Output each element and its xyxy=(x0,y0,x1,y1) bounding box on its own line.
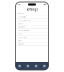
button[interactable]: General xyxy=(15,12,48,15)
button[interactable]: Search xyxy=(24,62,32,70)
button[interactable]: Screen Time xyxy=(15,36,48,39)
button[interactable]: Privacy & Security xyxy=(15,19,48,22)
button[interactable]: Wallpaper xyxy=(15,43,48,46)
staticText: Display xyxy=(18,23,23,25)
button[interactable]: Alerts xyxy=(32,62,40,70)
staticText: Wallpaper xyxy=(18,43,25,45)
button[interactable]: Home xyxy=(15,62,24,70)
staticText: Privacy & Security xyxy=(18,19,31,21)
button[interactable]: Sounds & Haptics xyxy=(15,29,48,32)
staticText: Notifications xyxy=(18,26,26,28)
staticText: General xyxy=(18,13,24,14)
staticText: Focus xyxy=(18,33,23,35)
staticText: Settings xyxy=(26,8,37,11)
staticText: Accessibility xyxy=(18,16,26,18)
staticText: Sounds & Haptics xyxy=(18,30,30,31)
button[interactable]: Battery xyxy=(15,39,48,43)
button[interactable]: Notifications xyxy=(15,26,48,29)
staticText: Screen Time xyxy=(18,36,27,38)
button[interactable]: Display xyxy=(15,22,48,26)
staticText: Battery xyxy=(18,40,23,42)
button[interactable]: Profile xyxy=(40,62,48,70)
staticText: 9:41 xyxy=(18,4,21,5)
button[interactable]: Accessibility xyxy=(15,15,48,19)
button[interactable]: Focus xyxy=(15,32,48,36)
